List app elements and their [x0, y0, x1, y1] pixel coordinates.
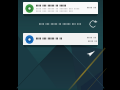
- button[interactable]: Refresh: [88, 19, 98, 29]
- button[interactable]: Notification: Code & bugs: [23, 33, 98, 45]
- button[interactable]: Notification: Check out the app: [23, 2, 98, 14]
- button[interactable]: Send: [86, 49, 95, 58]
